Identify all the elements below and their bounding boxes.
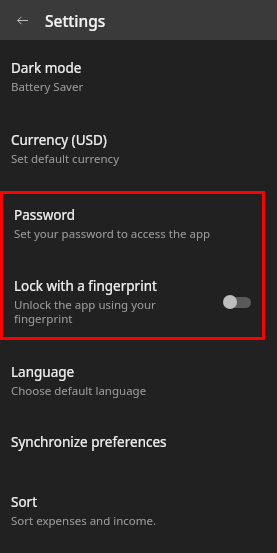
staticText: Password: [14, 206, 76, 224]
staticText: Currency (USD): [11, 131, 107, 149]
button[interactable]: Currency (USD): [0, 122, 277, 176]
button[interactable]: Language: [0, 354, 277, 408]
staticText: Settings: [45, 10, 106, 31]
staticText: Lock with a fingerprint: [14, 277, 157, 295]
button[interactable]: Lock with a fingerprint: [3, 268, 262, 335]
button[interactable]: Back: [9, 7, 35, 33]
staticText: Language: [11, 363, 75, 381]
staticText: Set your password to access the app: [14, 226, 211, 242]
button[interactable]: Lock with a fingerprint toggle: [223, 295, 251, 309]
staticText: Choose default language: [11, 383, 147, 399]
staticText: Dark mode: [11, 59, 82, 77]
staticText: Sort: [11, 493, 38, 511]
button[interactable]: Sort: [0, 484, 277, 538]
button[interactable]: Password: [3, 197, 262, 251]
button[interactable]: Dark mode: [0, 50, 277, 104]
staticText: Synchronize preferences: [11, 433, 167, 451]
staticText: Battery Saver: [11, 79, 84, 95]
button[interactable]: Synchronize preferences: [0, 424, 277, 460]
staticText: Set default currency: [11, 151, 119, 167]
staticText: Sort expenses and income.: [11, 513, 157, 529]
staticText: Unlock the app using your fingerprint: [14, 297, 215, 326]
